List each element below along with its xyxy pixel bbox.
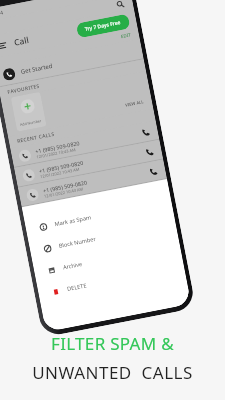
button[interactable]: Call back [146, 165, 159, 178]
staticText: Block Number [58, 235, 97, 250]
staticText: 12/01/2022 10:43 AM [36, 147, 76, 159]
staticText: +1 (985) 509-0820 [35, 139, 80, 155]
staticText: UNWANTED CALLS [32, 361, 193, 384]
button[interactable]: Archive [32, 234, 182, 284]
button[interactable]: Mark as Spam [24, 191, 173, 241]
staticText: Try 7 Days Free [84, 19, 122, 33]
staticText: DELETE [66, 281, 88, 293]
staticText: 11:04 [0, 9, 4, 19]
button[interactable]: Call back [142, 145, 155, 158]
staticText: 12/01/2022 10:43 AM [40, 167, 80, 179]
staticText: +1 (985) 509-0820 [50, 218, 95, 233]
button[interactable]: +1 (985) 509-0820 [26, 199, 174, 246]
button[interactable]: Menu [0, 39, 9, 52]
staticText: FAVOURITES [7, 83, 41, 96]
staticText: 12/01/2022 10:43 AM [47, 206, 88, 218]
button[interactable]: Block Number [28, 212, 178, 262]
staticText: 12/01/2022 10:43 AM [44, 186, 84, 199]
staticText: FILTER SPAM & [51, 332, 174, 355]
button[interactable]: Get Started [0, 39, 144, 87]
staticText: +1 (985) 509-0820 [42, 178, 88, 194]
button[interactable]: DELETE [37, 256, 186, 305]
button[interactable]: +1 (985) 509-0820 [14, 140, 163, 187]
button[interactable]: Search [114, 0, 126, 10]
button[interactable]: +1 (985) 509-0820 [18, 159, 167, 206]
button[interactable]: +1 (985) 509-0820 [10, 120, 159, 167]
staticText: Call [13, 34, 30, 49]
staticText: +1 (985) 509-0820 [46, 198, 92, 214]
staticText: RECENT CALLS [16, 131, 56, 145]
button[interactable]: Call back [139, 125, 152, 138]
button[interactable]: VIEW ALL [125, 98, 152, 109]
button[interactable]: +1 (985) 509-0820 [22, 179, 171, 226]
staticText: Add Number [19, 118, 42, 127]
button[interactable]: EDIT [120, 31, 131, 39]
button[interactable]: Add Number [11, 92, 47, 132]
staticText: Archive [62, 260, 83, 271]
staticText: +1 (985) 509-0820 [38, 159, 84, 174]
button[interactable]: Try 7 Days Free [76, 13, 131, 38]
staticText: Get Started [20, 62, 54, 76]
staticText: Mark as Spam [54, 213, 93, 228]
